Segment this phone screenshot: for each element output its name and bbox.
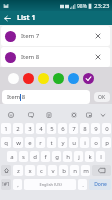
staticText: !#1 [2, 181, 10, 188]
button[interactable]: h [63, 151, 72, 162]
staticText: d [33, 153, 37, 161]
button[interactable]: English (US) [24, 179, 76, 190]
button[interactable]: y [58, 137, 67, 148]
staticText: 3 [28, 125, 32, 133]
button[interactable]: 1 [1, 123, 11, 134]
staticText: t [50, 139, 53, 147]
button[interactable]: m [81, 165, 90, 176]
button[interactable]: Colour 1 [8, 73, 19, 84]
button[interactable]: 8 [80, 123, 89, 134]
button[interactable]: Remove Item 8 [93, 52, 103, 62]
button[interactable]: Item 7 [1, 26, 110, 46]
button[interactable]: !#1 [1, 179, 11, 190]
staticText: 4 [39, 125, 43, 133]
staticText: j [78, 153, 80, 161]
staticText: 1 [4, 125, 8, 133]
staticText: English (US) [39, 182, 62, 187]
button[interactable]: e [25, 137, 34, 148]
button[interactable]: 6 [58, 123, 67, 134]
button[interactable]: l [96, 151, 105, 162]
staticText: , [17, 181, 19, 189]
button[interactable]: 5 [47, 123, 56, 134]
button[interactable]: v [48, 165, 57, 176]
button[interactable]: g [52, 151, 61, 162]
button[interactable]: 3 [25, 123, 34, 134]
staticText: f [44, 153, 47, 161]
button[interactable]: Keyboard action 4 [69, 110, 79, 120]
button[interactable]: t [47, 137, 56, 148]
button[interactable]: s [19, 151, 28, 162]
staticText: Item 7 [21, 32, 40, 40]
staticText: List 1 [17, 13, 36, 23]
button[interactable]: f [41, 151, 50, 162]
staticText: Item 8 [7, 93, 26, 101]
button[interactable]: 9 [91, 123, 100, 134]
button[interactable]: z [13, 165, 23, 176]
staticText: g [55, 153, 59, 161]
staticText: n [73, 167, 77, 175]
button[interactable]: Colour 3 [38, 73, 49, 84]
button[interactable]: x [25, 165, 35, 176]
button[interactable]: Colour 2 [23, 73, 34, 84]
staticText: Done [94, 181, 107, 188]
staticText: u [72, 139, 76, 147]
button[interactable]: Done [89, 179, 111, 190]
staticText: 6 [61, 125, 65, 133]
button[interactable]: u [69, 137, 78, 148]
button[interactable]: Colour 6 [83, 73, 94, 84]
staticText: 9 [94, 125, 98, 133]
button[interactable]: Keyboard action 1 [6, 110, 16, 120]
staticText: 0 [105, 125, 109, 133]
button[interactable]: Keyboard action 6 [98, 110, 108, 120]
button[interactable]: Colour 5 [68, 73, 79, 84]
button[interactable]: k [85, 151, 94, 162]
button[interactable]: Back [1, 12, 13, 24]
staticText: 5 [50, 125, 54, 133]
button[interactable]: Remove Item 7 [93, 31, 103, 41]
button[interactable]: . [78, 179, 87, 190]
staticText: p [105, 139, 109, 147]
button[interactable]: i [80, 137, 89, 148]
staticText: s [22, 153, 25, 161]
button[interactable]: Keyboard action 2 [26, 110, 36, 120]
button[interactable]: , [13, 179, 22, 190]
button[interactable]: 4 [36, 123, 45, 134]
staticText: a [10, 153, 14, 161]
staticText: x [28, 167, 32, 175]
button[interactable]: w [13, 137, 23, 148]
staticText: v [51, 167, 55, 175]
button[interactable]: Item 8 [2, 90, 90, 104]
staticText: z [17, 167, 20, 175]
button[interactable]: n [70, 165, 79, 176]
staticText: 7 [72, 125, 76, 133]
staticText: o [94, 139, 98, 147]
staticText: i [84, 139, 86, 147]
staticText: m [83, 167, 89, 175]
button[interactable]: 0 [102, 123, 111, 134]
button[interactable]: q [1, 137, 11, 148]
button[interactable]: c [37, 165, 46, 176]
button[interactable]: a [7, 151, 17, 162]
staticText: e [28, 139, 32, 147]
button[interactable]: d [30, 151, 39, 162]
button[interactable]: Item 8 [1, 47, 110, 67]
staticText: h [66, 153, 70, 161]
button[interactable]: b [59, 165, 68, 176]
button[interactable]: OK [94, 92, 110, 102]
button[interactable]: j [74, 151, 83, 162]
staticText: y [61, 139, 65, 147]
staticText: 2 [16, 125, 20, 133]
button[interactable]: r [36, 137, 45, 148]
staticText: k [88, 153, 92, 161]
staticText: c [40, 167, 43, 175]
button[interactable]: o [91, 137, 100, 148]
button[interactable]: 2 [13, 123, 23, 134]
button[interactable]: Colour 4 [53, 73, 64, 84]
button[interactable]: p [102, 137, 111, 148]
staticText: 8 [83, 125, 87, 133]
button[interactable]: 7 [69, 123, 78, 134]
button[interactable]: Keyboard action 5 [84, 110, 94, 120]
button[interactable]: Keyboard action 3 [44, 110, 54, 120]
button[interactable]: Shift [1, 165, 11, 176]
button[interactable]: Backspace [92, 165, 111, 176]
